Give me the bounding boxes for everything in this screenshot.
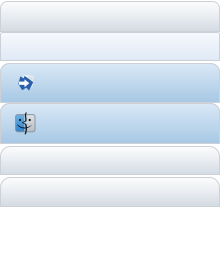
button[interactable]: Move item bbox=[0, 63, 220, 103]
button[interactable]: Finder bbox=[0, 103, 220, 144]
